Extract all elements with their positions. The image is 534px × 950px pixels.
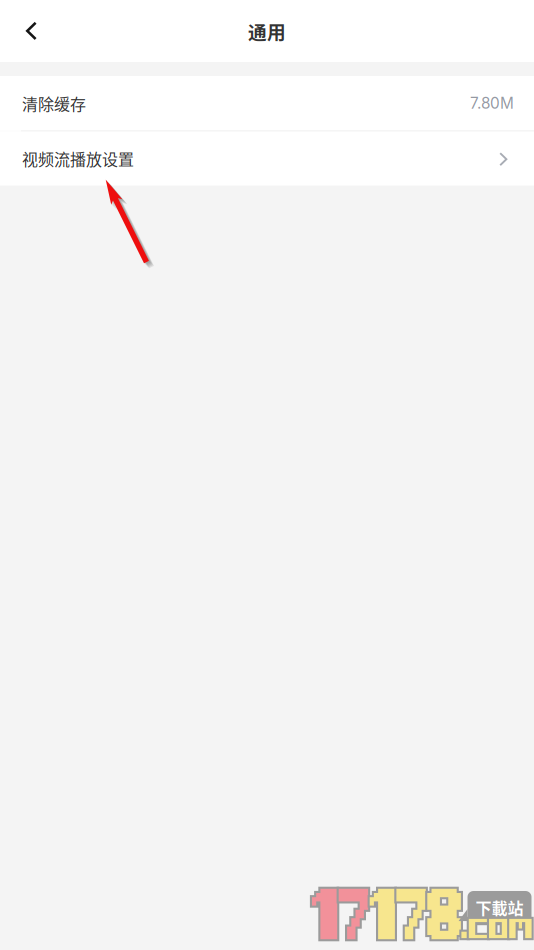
button[interactable]: 视频流播放设置 [0,131,534,185]
staticText: 通用 [248,17,286,44]
staticText: 7.80M [470,94,514,113]
staticText: 下載站 [475,896,523,919]
button[interactable]: Back [0,3,64,59]
staticText: 视频流播放设置 [22,147,134,170]
button[interactable]: 清除缓存 [0,76,534,130]
staticText: 清除缓存 [22,92,86,115]
